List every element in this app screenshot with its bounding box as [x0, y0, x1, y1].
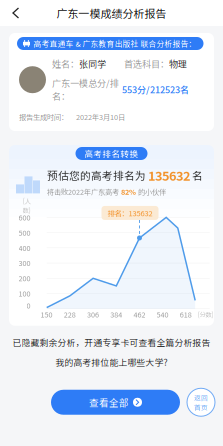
staticText: 600 — [18, 212, 30, 223]
staticText: 135632 — [148, 166, 190, 184]
staticText: 排名：135632 — [107, 207, 152, 218]
staticText: 的小伙伴 — [138, 186, 166, 197]
button[interactable]: 返回 — [0, 0, 32, 26]
staticText: 张同学 — [79, 57, 106, 70]
staticText: 150 — [41, 309, 53, 319]
staticText: 广东一模成绩分析报告 — [56, 5, 166, 21]
staticText: 306 — [87, 309, 99, 319]
staticText: 553分/212523名 — [122, 83, 189, 96]
staticText: 物理 — [169, 57, 187, 70]
staticText: 首选科目： — [124, 57, 169, 70]
staticText: 名 — [192, 167, 203, 183]
staticText: 广东一模总分/排名： — [52, 76, 119, 102]
staticText: 540 — [157, 309, 169, 319]
staticText: 400 — [18, 243, 30, 253]
staticText: 228 — [64, 309, 76, 319]
staticText: 报告生成时间： — [19, 111, 68, 122]
staticText: 返回 — [194, 393, 208, 402]
staticText: 首页 — [194, 402, 208, 412]
staticText: 500 — [18, 227, 30, 238]
staticText: 高考直通车 & 广东教育出版社 联合分析报告： — [33, 38, 196, 49]
staticText: 我的高考排位能上哪些大学? — [55, 355, 167, 368]
button[interactable]: 查看全部 — [51, 390, 180, 415]
staticText: 82% — [121, 186, 136, 197]
staticText: (人数) — [22, 196, 30, 214]
staticText: 已隐藏剩余分析，开通专享卡可查看全篇分析报告 — [12, 336, 210, 348]
staticText: 462 — [133, 309, 145, 319]
staticText: 100 — [18, 288, 30, 299]
staticText: 0 — [26, 300, 30, 311]
staticText: 预估您的高考排名为 — [47, 167, 146, 183]
staticText: 384 — [110, 309, 122, 319]
staticText: 高考排名转换 — [84, 147, 138, 160]
staticText: (分数) — [197, 310, 213, 319]
staticText: 查看全部 — [89, 395, 129, 409]
staticText: 2022年3月10日 — [76, 111, 125, 122]
staticText: 姓名： — [52, 57, 79, 70]
button[interactable]: 返回首页 — [187, 388, 215, 416]
staticText: 将击败2022年广东高考 — [47, 186, 119, 197]
staticText: 300 — [18, 258, 30, 268]
staticText: 200 — [18, 273, 30, 283]
staticText: 618 — [180, 309, 192, 319]
